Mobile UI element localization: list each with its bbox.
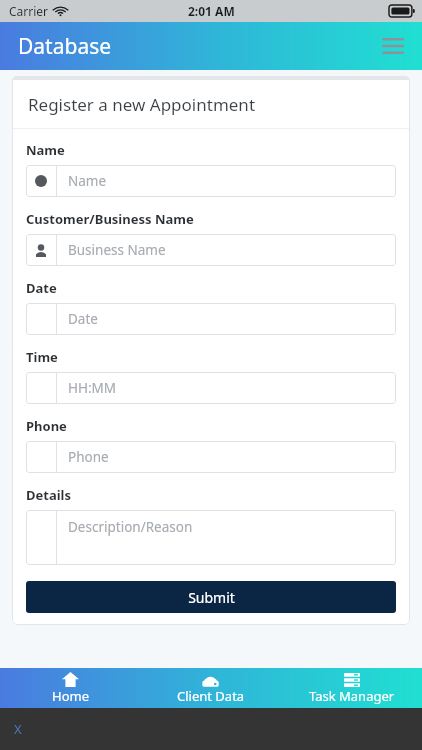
button[interactable]: Date	[26, 303, 396, 335]
staticText: Date	[26, 279, 57, 297]
staticText: Client Data	[177, 687, 245, 705]
button[interactable]: Business Name	[26, 234, 396, 266]
staticText: Description/Reason	[68, 518, 193, 536]
staticText: Carrier	[9, 3, 49, 19]
button[interactable]: Menu	[376, 29, 410, 63]
staticText: Details	[26, 486, 71, 504]
staticText: Phone	[68, 448, 109, 466]
staticText: Business Name	[68, 241, 166, 259]
button[interactable]: Close	[14, 717, 38, 741]
staticText: Date	[68, 310, 98, 328]
staticText: Submit	[188, 588, 235, 607]
button[interactable]: Submit	[26, 581, 396, 613]
staticText: Phone	[26, 417, 67, 435]
staticText: Customer/Business Name	[26, 210, 194, 228]
button[interactable]: Home	[0, 668, 140, 708]
staticText: HH:MM	[68, 379, 117, 397]
button[interactable]: Name	[26, 165, 396, 197]
staticText: Task Manager	[309, 687, 395, 705]
staticText: Time	[26, 348, 58, 366]
button[interactable]: Description/Reason	[26, 510, 396, 565]
staticText: 2:01 AM	[188, 3, 235, 19]
staticText: Name	[68, 172, 107, 190]
staticText: Database	[18, 32, 112, 61]
staticText: X	[14, 720, 22, 738]
button[interactable]: Client Data	[140, 668, 281, 708]
button[interactable]: HH:MM	[26, 372, 396, 404]
button[interactable]: Task Manager	[281, 668, 422, 708]
staticText: Name	[26, 141, 65, 159]
staticText: Register a new Appointment	[28, 93, 256, 116]
button[interactable]: Phone	[26, 441, 396, 473]
staticText: Home	[52, 687, 89, 705]
